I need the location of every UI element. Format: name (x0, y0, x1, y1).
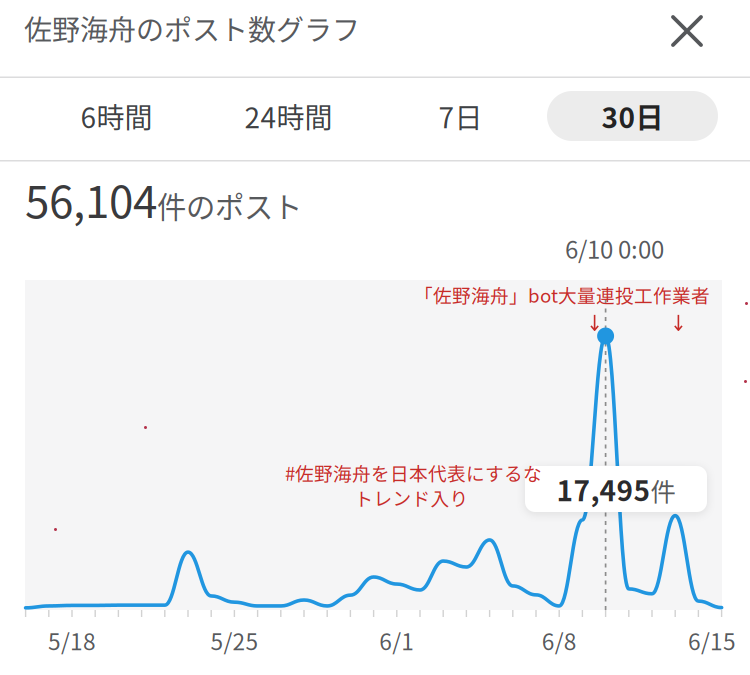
staticText: 17,495 (556, 469, 650, 509)
staticText: 「佐野海舟」bot大量連投工作業者 (414, 281, 710, 308)
button[interactable]: 7日 (375, 91, 546, 141)
staticText: 6/1 (379, 624, 414, 657)
staticText: #佐野海舟を日本代表にするな (285, 459, 542, 486)
staticText: 6時間 (80, 96, 152, 136)
staticText: 件のポスト (157, 184, 302, 226)
staticText: 5/18 (48, 624, 96, 657)
staticText: 佐野海舟のポスト数グラフ (24, 8, 360, 48)
staticText: 56,104 (25, 167, 157, 231)
staticText: 5/25 (211, 624, 259, 657)
staticText: 6/10 0:00 (565, 231, 664, 266)
button[interactable]: 24時間 (203, 91, 374, 141)
button[interactable]: 30日 (547, 91, 718, 141)
staticText: 30日 (601, 96, 663, 136)
staticText: 24時間 (244, 96, 332, 136)
staticText: 6/15 (688, 624, 736, 657)
button[interactable]: 閉じる (671, 15, 703, 47)
staticText: 7日 (438, 96, 482, 136)
staticText: 6/8 (542, 624, 577, 657)
button[interactable]: 6時間 (31, 91, 202, 141)
staticText: 件 (650, 472, 675, 508)
staticText: トレンド入り (354, 484, 468, 511)
